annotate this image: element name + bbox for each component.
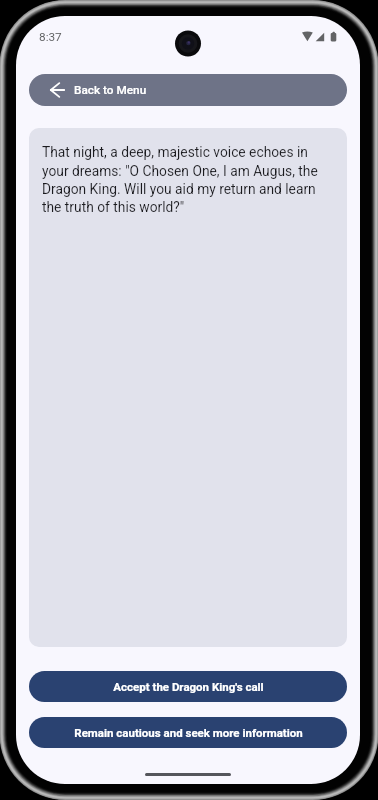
button[interactable]: Remain cautious and seek more informatio…	[29, 717, 347, 748]
button[interactable]: Back to Menu	[29, 74, 347, 106]
button[interactable]: Accept the Dragon King's call	[29, 671, 347, 702]
staticText: Remain cautious and seek more informatio…	[74, 726, 303, 739]
staticText: Back to Menu	[74, 83, 147, 97]
staticText: Accept the Dragon King's call	[113, 680, 264, 693]
staticText: That night, a deep, majestic voice echoe…	[42, 144, 334, 215]
staticText: 8:37	[39, 30, 62, 44]
